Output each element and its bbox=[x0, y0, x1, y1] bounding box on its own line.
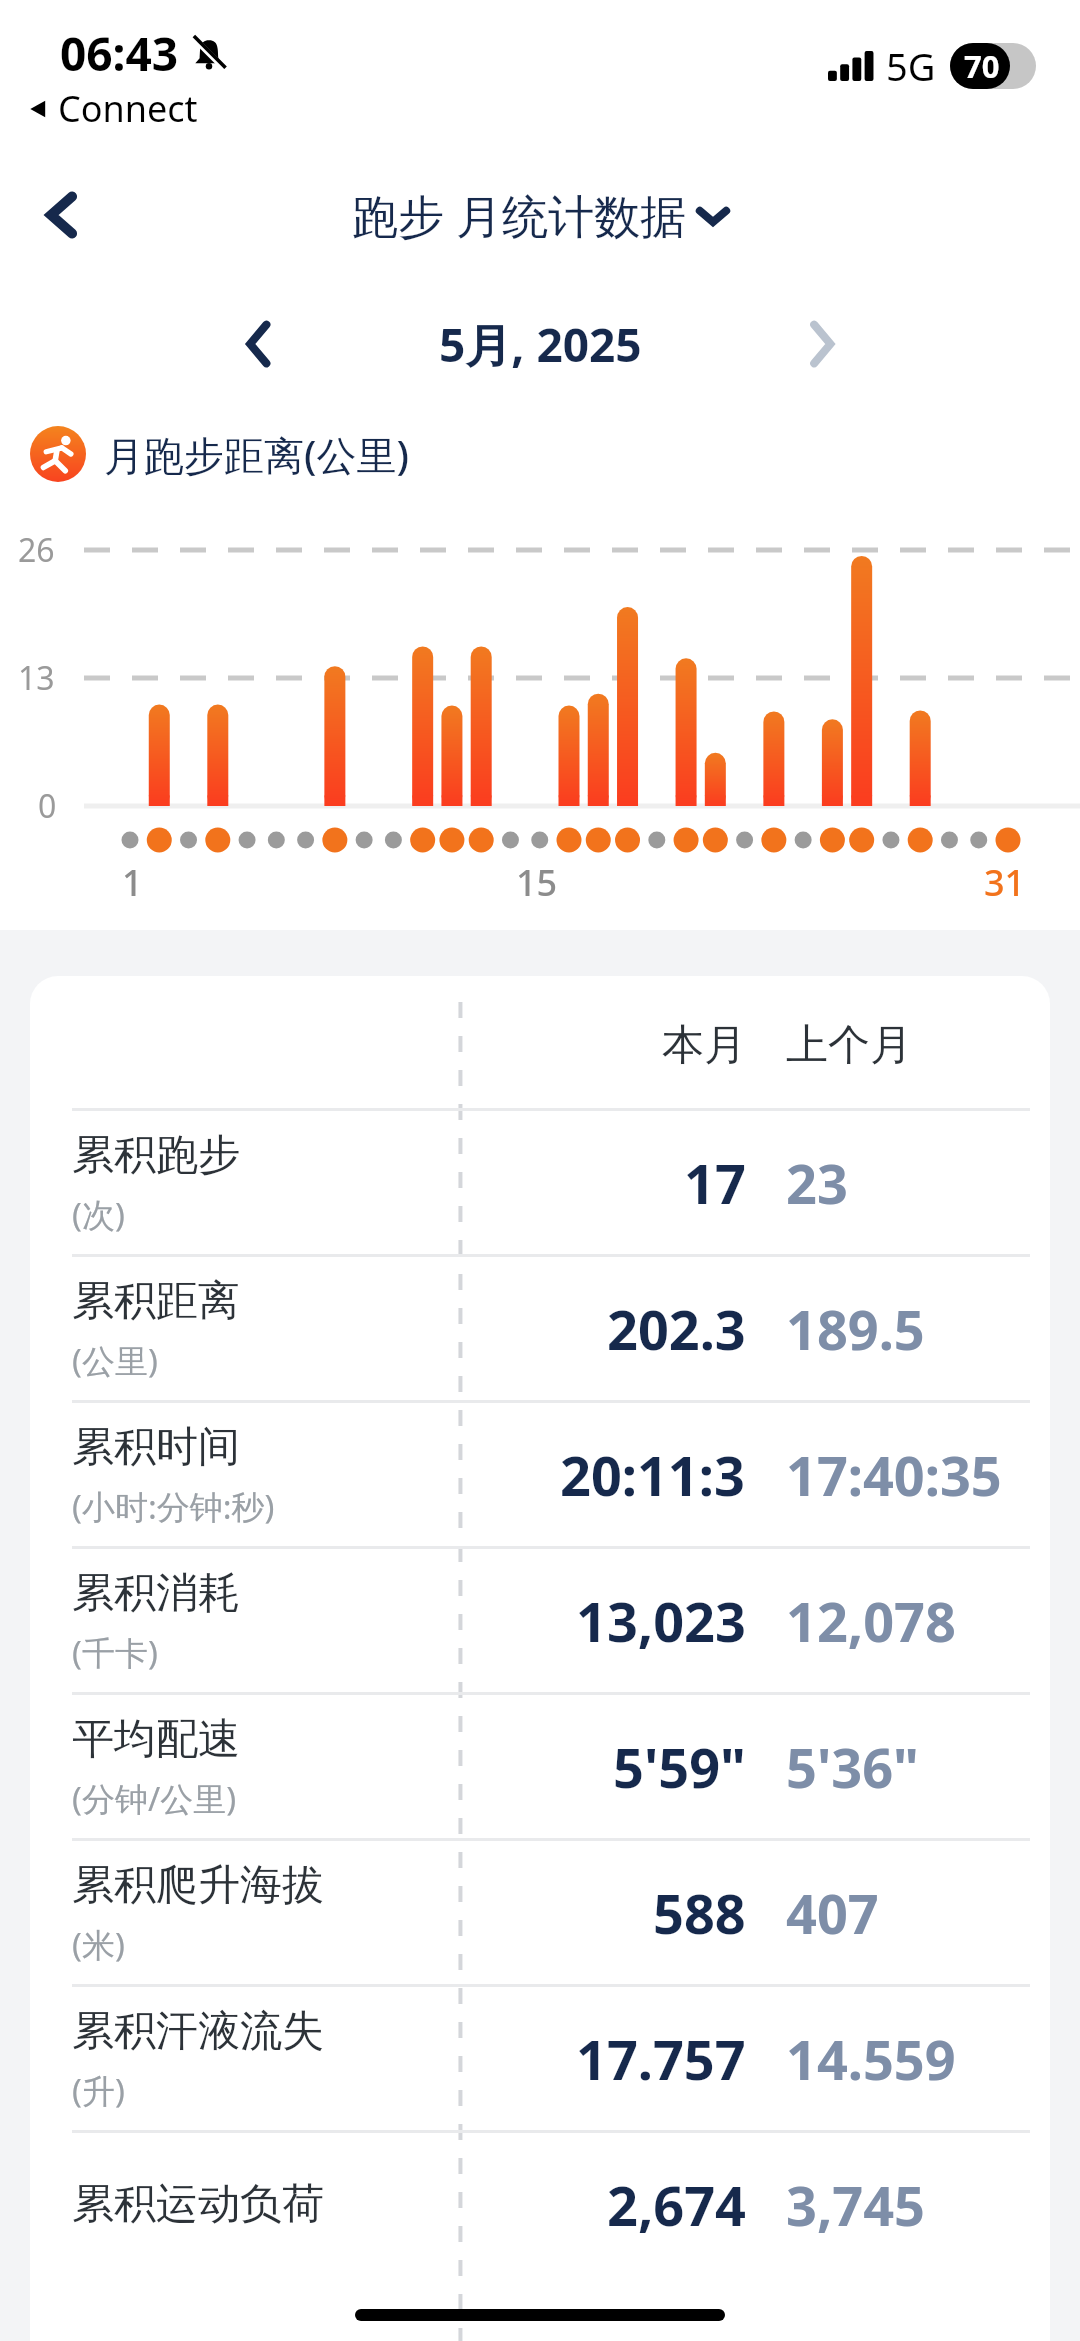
staticText: 17.757 bbox=[576, 2022, 746, 2096]
button[interactable]: Back bbox=[22, 175, 102, 255]
staticText: 累积运动负荷 bbox=[72, 2178, 324, 2231]
staticText: (公里) bbox=[72, 1338, 158, 1383]
staticText: (千卡) bbox=[72, 1630, 158, 1675]
staticText: 17 bbox=[684, 1146, 746, 1220]
staticText: 13 bbox=[18, 656, 55, 700]
staticText: 5'59" bbox=[613, 1730, 746, 1804]
staticText: 累积距离 bbox=[72, 1275, 240, 1328]
staticText: Connect bbox=[58, 84, 198, 133]
staticText: 平均配速 bbox=[72, 1713, 240, 1766]
staticText: 累积时间 bbox=[72, 1421, 240, 1474]
staticText: 5'36" bbox=[786, 1730, 919, 1804]
staticText: 累积消耗 bbox=[72, 1567, 240, 1620]
staticText: (米) bbox=[72, 1922, 125, 1967]
button[interactable]: 跑步 月统计数据 bbox=[352, 184, 728, 247]
staticText: 本月 bbox=[662, 1019, 746, 1072]
staticText: 407 bbox=[786, 1876, 879, 1950]
button[interactable]: 累积距离 bbox=[30, 1257, 1050, 1400]
staticText: 12,078 bbox=[786, 1584, 956, 1658]
staticText: 累积跑步 bbox=[72, 1129, 240, 1182]
staticText: 0 bbox=[38, 784, 57, 828]
staticText: 累积汗液流失 bbox=[72, 2005, 324, 2058]
staticText: 20:11:33 bbox=[560, 1438, 746, 1512]
button[interactable]: 累积运动负荷 bbox=[30, 2133, 1050, 2276]
button[interactable]: Next month bbox=[786, 308, 858, 380]
staticText: (升) bbox=[72, 2068, 125, 2113]
staticText: 上个月 bbox=[786, 1019, 912, 1072]
staticText: 累积爬升海拔 bbox=[72, 1859, 324, 1912]
staticText: 26 bbox=[18, 528, 55, 572]
button[interactable]: 累积爬升海拔 bbox=[30, 1841, 1050, 1984]
staticText: (小时:分钟:秒) bbox=[72, 1484, 275, 1529]
button[interactable]: 累积汗液流失 bbox=[30, 1987, 1050, 2130]
button[interactable]: Previous month bbox=[222, 308, 294, 380]
staticText: 月跑步距离(公里) bbox=[104, 427, 409, 482]
staticText: (次) bbox=[72, 1192, 125, 1237]
staticText: 2,674 bbox=[607, 2168, 746, 2242]
staticText: 跑步 月统计数据 bbox=[352, 184, 686, 247]
button[interactable]: 月跑步距离(公里) bbox=[30, 426, 1080, 482]
staticText: 23 bbox=[786, 1146, 848, 1220]
staticText: 13,023 bbox=[576, 1584, 746, 1658]
staticText: 17:40:35 bbox=[786, 1438, 1002, 1512]
staticText: 31 bbox=[984, 858, 1026, 906]
staticText: 70 bbox=[964, 45, 1000, 87]
staticText: 189.5 bbox=[786, 1292, 925, 1366]
staticText: 15 bbox=[516, 858, 558, 906]
staticText: 1 bbox=[122, 858, 143, 906]
button[interactable]: 5月, 2025 bbox=[439, 313, 642, 376]
staticText: 588 bbox=[653, 1876, 746, 1950]
staticText: (分钟/公里) bbox=[72, 1776, 237, 1821]
button[interactable]: 平均配速 bbox=[30, 1695, 1050, 1838]
staticText: 3,745 bbox=[786, 2168, 925, 2242]
button[interactable]: 累积消耗 bbox=[30, 1549, 1050, 1692]
staticText: 14.559 bbox=[786, 2022, 956, 2096]
staticText: 202.3 bbox=[607, 1292, 746, 1366]
button[interactable]: 累积跑步 bbox=[30, 1111, 1050, 1254]
staticText: 06:43 bbox=[60, 22, 179, 85]
staticText: 5G bbox=[886, 40, 936, 92]
button[interactable]: 累积时间 bbox=[30, 1403, 1050, 1546]
